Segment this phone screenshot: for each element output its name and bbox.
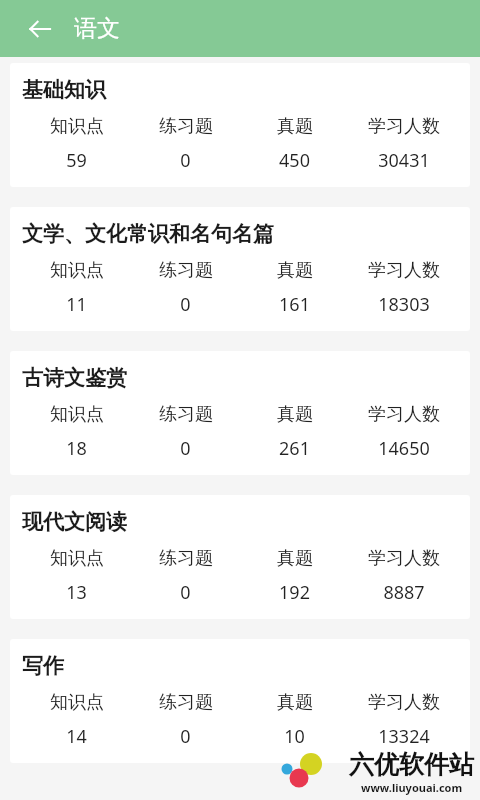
staticText: 18	[66, 436, 87, 461]
staticText: 练习题	[159, 115, 213, 138]
staticText: 知识点	[50, 403, 104, 426]
staticText: 真题	[277, 259, 313, 282]
staticText: 真题	[277, 547, 313, 570]
staticText: www.liuyouai.com	[361, 780, 463, 795]
staticText: 知识点	[50, 115, 104, 138]
staticText: 语文	[74, 14, 120, 43]
button[interactable]: 文学、文化常识和名句名篇	[10, 207, 470, 331]
staticText: 古诗文鉴赏	[22, 365, 127, 391]
staticText: 0	[180, 580, 191, 605]
staticText: 练习题	[159, 547, 213, 570]
staticText: 18303	[378, 292, 430, 317]
staticText: 练习题	[159, 259, 213, 282]
staticText: 文学、文化常识和名句名篇	[22, 221, 274, 247]
button[interactable]: 写作	[10, 639, 470, 763]
staticText: 192	[279, 580, 310, 605]
staticText: 真题	[277, 115, 313, 138]
staticText: 8887	[383, 580, 425, 605]
staticText: 13324	[378, 724, 430, 749]
staticText: 13	[66, 580, 87, 605]
staticText: 练习题	[159, 691, 213, 714]
staticText: 学习人数	[368, 547, 440, 570]
staticText: 真题	[277, 691, 313, 714]
staticText: 基础知识	[22, 77, 106, 103]
staticText: 真题	[277, 403, 313, 426]
staticText: 0	[180, 724, 191, 749]
button[interactable]: 现代文阅读	[10, 495, 470, 619]
staticText: 14650	[378, 436, 430, 461]
staticText: 练习题	[159, 403, 213, 426]
staticText: 261	[279, 436, 310, 461]
staticText: 10	[284, 724, 305, 749]
staticText: 学习人数	[368, 691, 440, 714]
staticText: 知识点	[50, 547, 104, 570]
staticText: 知识点	[50, 259, 104, 282]
button[interactable]: 古诗文鉴赏	[10, 351, 470, 475]
staticText: 学习人数	[368, 115, 440, 138]
staticText: 59	[66, 148, 87, 173]
staticText: 14	[66, 724, 87, 749]
staticText: 161	[279, 292, 310, 317]
staticText: 0	[180, 436, 191, 461]
staticText: 写作	[22, 653, 64, 679]
staticText: 450	[279, 148, 310, 173]
staticText: 知识点	[50, 691, 104, 714]
staticText: 0	[180, 148, 191, 173]
staticText: 学习人数	[368, 259, 440, 282]
staticText: 11	[66, 292, 87, 317]
staticText: 0	[180, 292, 191, 317]
button[interactable]: 基础知识	[10, 63, 470, 187]
staticText: 现代文阅读	[22, 509, 127, 535]
staticText: 学习人数	[368, 403, 440, 426]
staticText: 六优软件站	[349, 749, 474, 780]
staticText: 30431	[378, 148, 430, 173]
button[interactable]: Back	[18, 7, 62, 51]
